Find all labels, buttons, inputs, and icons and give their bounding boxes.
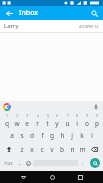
- staticText: y: [55, 119, 59, 128]
- button[interactable]: .: [78, 156, 87, 170]
- button[interactable]: 5: [42, 113, 52, 128]
- staticText: ,: [19, 159, 21, 167]
- button[interactable]: l: [87, 128, 97, 142]
- staticText: m: [79, 145, 86, 154]
- staticText: Larry: [4, 22, 19, 30]
- button[interactable]: Search: [88, 7, 100, 19]
- staticText: 9: [86, 114, 88, 118]
- button[interactable]: 9: [82, 113, 92, 128]
- button[interactable]: 6: [52, 113, 62, 128]
- staticText: 2: [16, 114, 18, 118]
- staticText: p: [95, 119, 99, 128]
- button[interactable]: ,: [16, 156, 24, 170]
- staticText: v: [50, 145, 54, 154]
- staticText: q: [5, 119, 9, 128]
- button[interactable]: f: [37, 128, 47, 142]
- button[interactable]: Voice input: [91, 102, 101, 112]
- button[interactable]: Back: [17, 171, 29, 183]
- button[interactable]: 0: [92, 113, 102, 128]
- staticText: 0: [96, 114, 98, 118]
- staticText: b: [60, 145, 64, 154]
- button[interactable]: Google: [2, 102, 12, 112]
- staticText: u: [65, 119, 70, 128]
- button[interactable]: d: [27, 128, 37, 142]
- button[interactable]: Back: [3, 7, 15, 19]
- button[interactable]: s: [17, 128, 27, 142]
- button[interactable]: Larry: [0, 20, 103, 32]
- staticText: r: [36, 119, 39, 128]
- button[interactable]: 4: [32, 113, 42, 128]
- staticText: ?123: [4, 161, 13, 166]
- staticText: 5: [47, 114, 49, 118]
- staticText: 4: [37, 114, 39, 118]
- staticText: k: [80, 131, 84, 140]
- staticText: 1: [6, 114, 8, 118]
- button[interactable]: 1: [1, 113, 12, 128]
- staticText: .: [82, 159, 84, 167]
- button[interactable]: 8: [72, 113, 82, 128]
- button[interactable]: n: [67, 142, 77, 156]
- staticText: j: [71, 131, 73, 140]
- button[interactable]: k: [77, 128, 87, 142]
- button[interactable]: 2: [12, 113, 22, 128]
- staticText: t: [46, 119, 49, 128]
- staticText: 6: [56, 114, 58, 118]
- staticText: x: [30, 145, 34, 154]
- staticText: h: [60, 131, 65, 140]
- button[interactable]: 3: [22, 113, 32, 128]
- staticText: c: [40, 145, 44, 154]
- button[interactable]: x: [27, 142, 37, 156]
- button[interactable]: j: [67, 128, 77, 142]
- staticText: s: [20, 131, 24, 140]
- button[interactable]: Search: [90, 158, 100, 168]
- button[interactable]: v: [47, 142, 57, 156]
- button[interactable]: Shift: [1, 142, 17, 156]
- staticText: d: [30, 131, 34, 140]
- staticText: i: [76, 119, 78, 128]
- staticText: z: [20, 145, 24, 154]
- button[interactable]: ?123: [1, 156, 16, 170]
- staticText: 4:03PM 12: [79, 24, 99, 29]
- button[interactable]: 7: [62, 113, 72, 128]
- button[interactable]: m: [77, 142, 87, 156]
- staticText: g: [50, 131, 54, 140]
- button[interactable]: b: [57, 142, 67, 156]
- staticText: 3: [26, 114, 28, 118]
- button[interactable]: Recents: [74, 171, 86, 183]
- button[interactable]: c: [37, 142, 47, 156]
- staticText: w: [14, 119, 20, 128]
- staticText: 7: [67, 114, 69, 118]
- staticText: 8: [76, 114, 78, 118]
- staticText: e: [25, 119, 29, 128]
- button[interactable]: Backspace: [87, 142, 102, 156]
- button[interactable]: Home: [46, 171, 58, 183]
- button[interactable]: Emoji: [24, 156, 33, 170]
- staticText: f: [41, 131, 44, 140]
- staticText: o: [85, 119, 89, 128]
- staticText: Inbox: [19, 8, 39, 18]
- button[interactable]: g: [47, 128, 57, 142]
- staticText: l: [91, 131, 93, 140]
- button[interactable]: a: [7, 128, 17, 142]
- button[interactable]: h: [57, 128, 67, 142]
- staticText: n: [70, 145, 75, 154]
- staticText: a: [10, 131, 14, 140]
- button[interactable]: z: [17, 142, 27, 156]
